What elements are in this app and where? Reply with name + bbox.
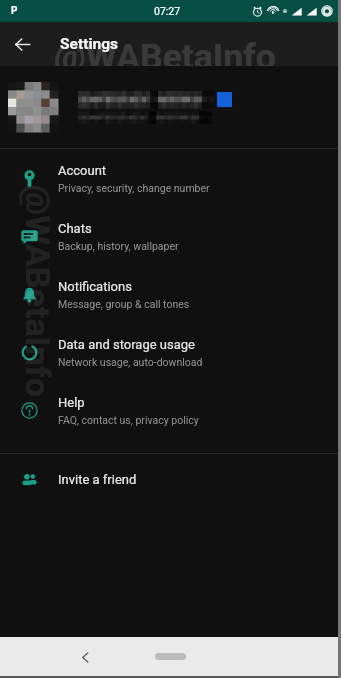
staticText: P: [11, 5, 18, 17]
staticText: @WABetaInfo: [17, 184, 57, 397]
staticText: Account: [58, 163, 107, 178]
button[interactable]: Notifications: [0, 265, 341, 323]
staticText: @WABetaInfo: [54, 36, 276, 66]
staticText: Settings: [60, 35, 119, 53]
button[interactable]: Home: [155, 653, 186, 660]
staticText: Privacy, security, change number: [58, 182, 210, 194]
button[interactable]: Invite a friend: [0, 454, 341, 504]
staticText: Help: [58, 395, 85, 410]
staticText: Backup, history, wallpaper: [58, 240, 179, 252]
button[interactable]: Back: [0, 22, 44, 66]
staticText: Invite a friend: [58, 472, 137, 487]
staticText: Chats: [58, 221, 92, 236]
staticText: FAQ, contact us, privacy policy: [58, 414, 199, 426]
staticText: Message, group & call tones: [58, 298, 190, 310]
staticText: Data and storage usage: [58, 337, 195, 352]
button[interactable]: Account: [0, 149, 341, 207]
staticText: Notifications: [58, 279, 132, 294]
button[interactable]: Chats: [0, 207, 341, 265]
button[interactable]: Data and storage usage: [0, 323, 341, 381]
button[interactable]: Back: [74, 646, 96, 668]
staticText: Network usage, auto-download: [58, 356, 203, 368]
staticText: 07:27: [154, 5, 181, 17]
button[interactable]: [0, 66, 341, 148]
button[interactable]: Help: [0, 381, 341, 439]
